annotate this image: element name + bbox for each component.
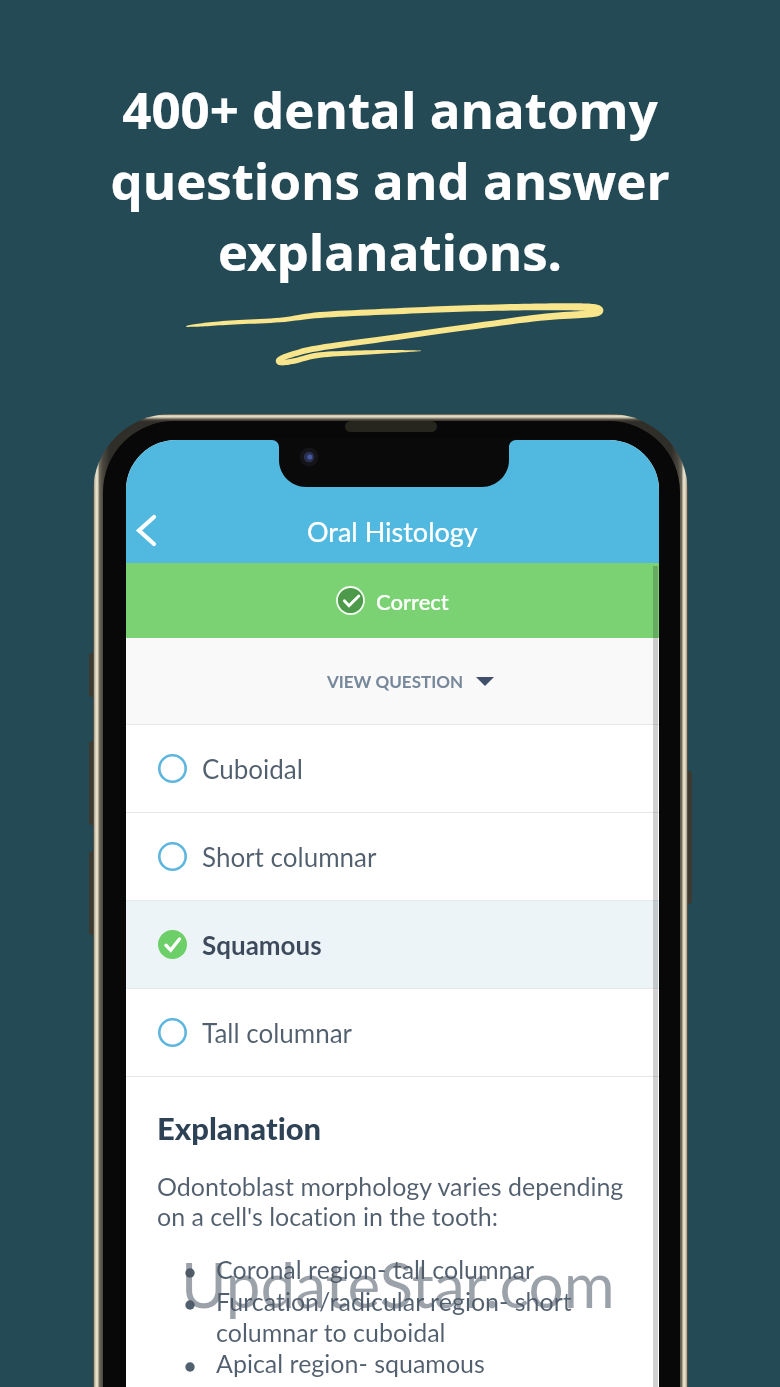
staticText: Furcation/radicular region- short column… xyxy=(216,1286,651,1348)
button[interactable]: Short columnar xyxy=(126,813,659,900)
button[interactable]: Tall columnar xyxy=(126,989,659,1076)
staticText: Short columnar xyxy=(202,841,377,872)
staticText: Squamous xyxy=(202,929,322,960)
staticText: 400+ dental anatomy questions and answer… xyxy=(0,74,780,286)
staticText: Cuboidal xyxy=(202,753,303,784)
staticText: Odontoblast morphology varies depending … xyxy=(157,1171,651,1232)
button[interactable]: VIEW QUESTION xyxy=(126,638,659,724)
button[interactable]: Cuboidal xyxy=(126,725,659,812)
staticText: Coronal region- tall columnar xyxy=(216,1254,535,1284)
button[interactable]: Squamous xyxy=(126,901,659,988)
staticText: UpdateStar.com xyxy=(181,1247,615,1321)
staticText: Oral Histology xyxy=(307,515,478,547)
button[interactable]: Back xyxy=(126,498,184,563)
staticText: Tall columnar xyxy=(202,1017,353,1048)
staticText: Explanation xyxy=(157,1109,322,1146)
staticText: Correct xyxy=(376,588,449,614)
staticText: Apical region- squamous xyxy=(216,1348,485,1378)
staticText: VIEW QUESTION xyxy=(327,671,464,691)
